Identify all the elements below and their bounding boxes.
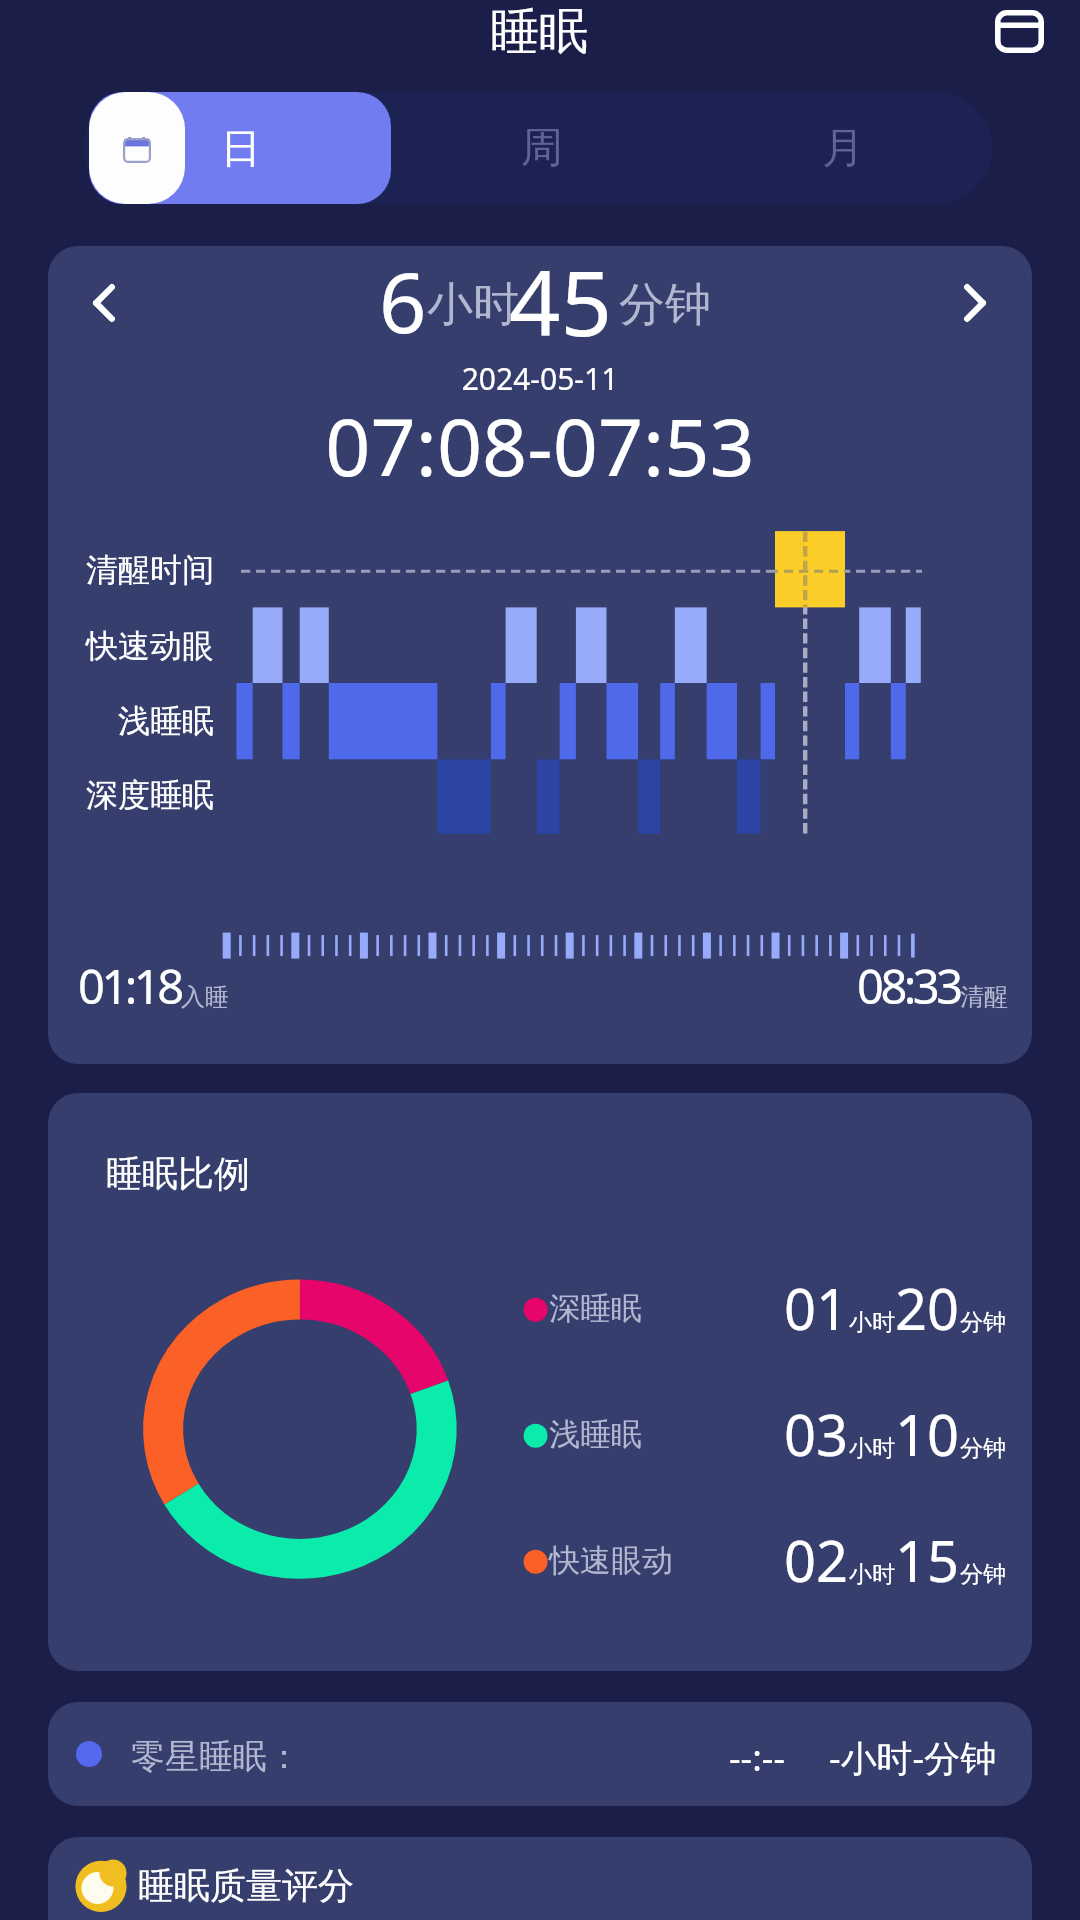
staticText: 睡眠比例	[106, 1151, 250, 1196]
staticText: 浅睡眠	[0, 701, 214, 741]
staticText: 快速眼动	[549, 1541, 673, 1580]
button[interactable]: 周	[391, 92, 693, 204]
staticText: 20	[895, 1270, 960, 1346]
staticText: 2024-05-11	[0, 358, 1080, 399]
button[interactable]	[48, 1702, 1032, 1806]
staticText: 快速动眼	[0, 626, 214, 666]
staticText: 零星睡眠：	[131, 1735, 301, 1778]
button[interactable]: Previous day	[64, 263, 144, 343]
staticText: 10	[895, 1396, 960, 1472]
button[interactable]: 月	[693, 92, 992, 204]
staticText: 6	[379, 244, 427, 357]
staticText: 45	[509, 240, 612, 363]
staticText: 07:08-07:53	[0, 392, 1080, 500]
staticText: 分钟	[960, 1560, 1006, 1589]
staticText: 清醒	[960, 982, 1008, 1012]
staticText: 02	[784, 1522, 849, 1598]
staticText: 周	[521, 122, 563, 175]
staticText: 小时	[849, 1308, 895, 1337]
staticText: 入睡	[181, 982, 229, 1012]
staticText: 小时	[849, 1434, 895, 1463]
staticText: 日	[221, 123, 261, 173]
staticText: 睡眠质量评分	[138, 1863, 354, 1908]
staticText: 睡眠	[490, 1, 588, 63]
staticText: 分钟	[960, 1308, 1006, 1337]
button[interactable]: Card view	[970, 0, 1068, 62]
staticText: 月	[822, 122, 864, 175]
staticText: 深度睡眠	[0, 775, 214, 815]
staticText: 08:33	[857, 954, 960, 1018]
staticText: 01:18	[78, 954, 181, 1018]
button[interactable]	[89, 92, 391, 204]
staticText: --:--	[729, 1733, 786, 1782]
staticText: 03	[784, 1396, 849, 1472]
staticText: -小时-分钟	[829, 1733, 997, 1782]
staticText: 分钟	[960, 1434, 1006, 1463]
staticText: 浅睡眠	[549, 1415, 642, 1454]
staticText: 分钟	[619, 276, 711, 334]
staticText: 15	[895, 1522, 960, 1598]
staticText: 小时	[849, 1560, 895, 1589]
staticText: 小时	[427, 276, 519, 334]
staticText: 清醒时间	[0, 550, 214, 590]
button[interactable]	[48, 1837, 1032, 1920]
staticText: 深睡眠	[549, 1289, 642, 1328]
staticText: 01	[784, 1270, 849, 1346]
button[interactable]: Next day	[935, 263, 1015, 343]
